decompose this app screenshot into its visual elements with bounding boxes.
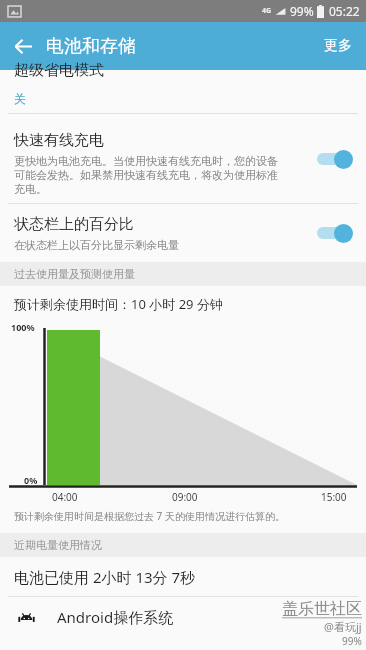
button[interactable]: 超级省电模式 — [0, 70, 366, 113]
staticText: 预计剩余使用时间：10 小时 29 分钟 — [14, 295, 223, 313]
staticText: 100% — [11, 321, 35, 333]
staticText: 盖乐世社区 — [282, 599, 362, 619]
staticText: 近期电量使用情况 — [14, 538, 102, 552]
staticText: 可能会发热。如果禁用快速有线充电，将改为使用标准 — [14, 168, 278, 182]
button[interactable]: 状态栏上的百分比 — [0, 204, 366, 262]
button[interactable]: Android操作系统 — [0, 597, 366, 637]
staticText: 更快地为电池充电。当使用快速有线充电时，您的设备 — [14, 154, 278, 168]
staticText: Android操作系统 — [57, 607, 174, 627]
staticText: 关 — [14, 91, 26, 106]
staticText: 09:00 — [172, 490, 198, 504]
staticText: @看玩jj — [324, 619, 362, 634]
staticText: 15:00 — [321, 490, 347, 504]
staticText: 4G — [262, 6, 272, 16]
staticText: 04:00 — [52, 490, 78, 504]
staticText: 状态栏上的百分比 — [14, 215, 134, 234]
button[interactable]: Toggle — [314, 148, 354, 170]
staticText: 电池和存储 — [46, 35, 136, 58]
staticText: 99% — [290, 3, 314, 19]
staticText: 超级省电模式 — [14, 61, 104, 80]
staticText: 更多 — [324, 37, 352, 55]
staticText: 快速有线充电 — [14, 131, 104, 150]
staticText: 电池已使用 2小时 13分 7秒 — [14, 567, 196, 587]
button[interactable]: 电池已使用 2小时 13分 7秒 — [0, 557, 366, 596]
staticText: 充电。 — [14, 182, 47, 196]
button[interactable]: 快速有线充电 — [0, 114, 366, 203]
staticText: 05:22 — [329, 3, 360, 19]
staticText: 99% — [342, 634, 362, 648]
staticText: 过去使用量及预测使用量 — [14, 267, 135, 281]
button[interactable]: Back — [0, 23, 46, 69]
staticText: 预计剩余使用时间是根据您过去 7 天的使用情况进行估算的。 — [14, 509, 285, 523]
staticText: 0% — [24, 474, 38, 486]
staticText: 在状态栏上以百分比显示剩余电量 — [14, 238, 179, 252]
button[interactable]: Toggle — [314, 222, 354, 244]
button[interactable]: 更多 — [310, 25, 366, 67]
